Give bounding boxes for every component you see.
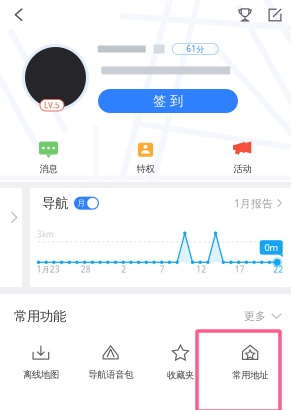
button[interactable]: 特权 [97,136,194,180]
staticText: 导航语音包 [88,369,133,380]
staticText: 1月报告 [234,196,273,210]
staticText: 活动 [233,163,251,175]
staticText: 更多 [244,310,266,323]
staticText: 常用功能 [14,308,66,324]
button[interactable]: 签 到 [98,89,238,113]
staticText: 消息 [39,163,57,175]
button[interactable]: 消息 [0,136,97,180]
staticText: 22 [273,264,283,275]
button[interactable]: 离线地图 [6,345,76,380]
button[interactable]: 活动 [194,136,291,180]
button[interactable]: 常用地址 [215,344,285,381]
staticText: 常用地址 [232,369,268,381]
button[interactable]: 导航语音包 [76,345,146,380]
staticText: 签 到 [153,93,183,109]
button[interactable]: 更多 [244,310,282,323]
staticText: 收藏夹 [167,369,194,381]
staticText: 3km [37,229,53,240]
staticText: 2 [121,264,126,275]
staticText: 17 [235,264,245,275]
staticText: 月 [77,198,85,208]
staticText: 12 [196,264,206,275]
staticText: 1月23 [37,264,60,275]
staticText: 61分 [186,44,204,54]
button[interactable]: Edit profile [258,2,291,28]
staticText: 特权 [136,163,154,175]
staticText: 0m [264,241,278,254]
staticText: LV.5 [44,100,60,110]
button[interactable]: 1月报告 [234,196,291,210]
staticText: 导航 [42,195,68,211]
staticText: 离线地图 [23,369,59,380]
button[interactable]: Achievements [232,2,258,28]
button[interactable]: 收藏夹 [145,344,215,381]
staticText: 7 [160,264,165,275]
button[interactable]: Back [0,1,34,28]
button[interactable]: 月 [74,197,99,210]
staticText: 28 [81,264,91,275]
